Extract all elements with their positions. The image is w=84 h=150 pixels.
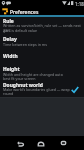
- staticText: 1:18: [75, 1, 84, 7]
- staticText: Width: [3, 53, 18, 60]
- staticText: Written as survive/birth, rule set — sen…: [3, 23, 84, 33]
- button[interactable]: Doughnut world: [0, 82, 84, 97]
- button[interactable]: Width: [0, 52, 84, 62]
- staticText: Time between steps in ms: [3, 42, 47, 47]
- staticText: 23/3 is default value: [3, 28, 37, 33]
- staticText: Preferences: [10, 9, 39, 16]
- staticText: round: [3, 91, 14, 96]
- staticText: best fit your screen: [3, 76, 36, 81]
- staticText: Width and height are changed auto: [3, 72, 63, 77]
- button[interactable]: Delay: [0, 36, 84, 47]
- staticText: Delay: [3, 36, 17, 43]
- button[interactable]: Back: [13, 136, 27, 150]
- staticText: Doughnut world: [3, 82, 43, 89]
- staticText: Make world's boundaries glued — wrap: [3, 87, 70, 92]
- button[interactable]: Home: [34, 136, 48, 150]
- button[interactable]: Recent apps: [56, 136, 70, 150]
- button[interactable]: Height: [0, 65, 84, 80]
- staticText: Rule: [3, 18, 14, 25]
- staticText: Height: [3, 66, 20, 73]
- button[interactable]: Rule: [0, 18, 84, 34]
